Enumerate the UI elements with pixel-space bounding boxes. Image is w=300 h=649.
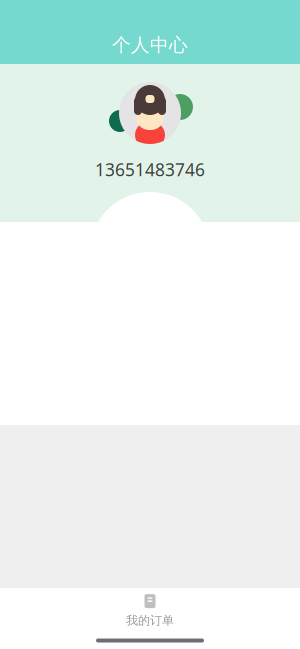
staticText: 个人中心: [112, 33, 188, 56]
button[interactable]: 我的订单: [50, 588, 250, 632]
staticText: 我的订单: [126, 613, 174, 628]
staticText: 13651483746: [95, 158, 205, 181]
